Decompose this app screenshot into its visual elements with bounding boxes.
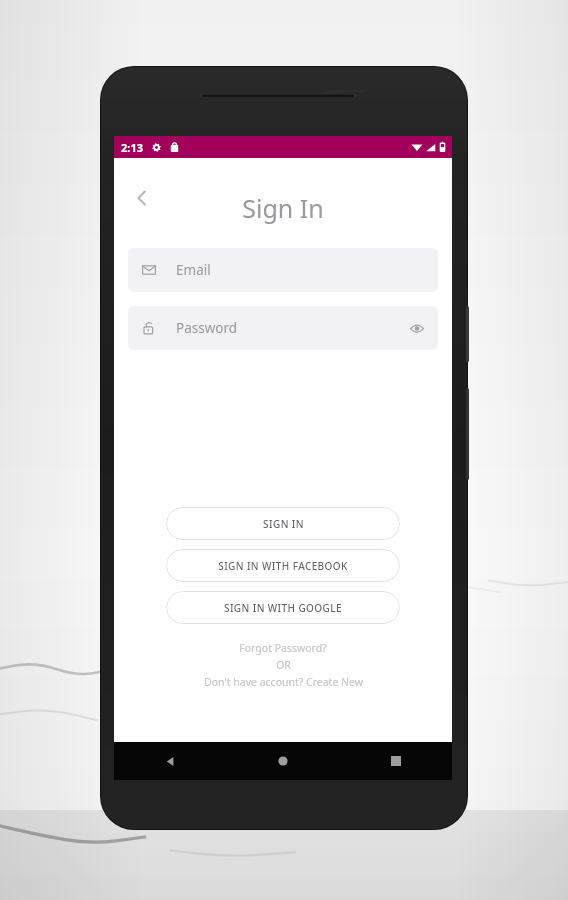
staticText: Forgot Password? bbox=[239, 641, 327, 655]
staticText: SIGN IN WITH FACEBOOK bbox=[218, 559, 348, 573]
staticText: Sign In bbox=[242, 191, 324, 225]
button[interactable]: SIGN IN WITH FACEBOOK bbox=[166, 549, 400, 582]
button[interactable]: Back bbox=[124, 180, 160, 216]
button[interactable]: SIGN IN WITH GOOGLE bbox=[166, 591, 400, 624]
button[interactable]: Don't have account? Create New bbox=[196, 674, 371, 690]
button[interactable]: Show password bbox=[402, 313, 432, 343]
button[interactable]: Back bbox=[114, 742, 226, 780]
button[interactable]: Password bbox=[128, 306, 438, 350]
button[interactable]: SIGN IN bbox=[166, 507, 400, 540]
staticText: OR bbox=[276, 658, 291, 672]
staticText: Email bbox=[176, 261, 211, 279]
button[interactable]: Recent apps bbox=[339, 742, 452, 780]
button[interactable]: Forgot Password? bbox=[231, 640, 335, 656]
staticText: SIGN IN bbox=[263, 517, 304, 531]
staticText: 2:13 bbox=[121, 140, 143, 155]
staticText: Password bbox=[176, 319, 238, 337]
button[interactable]: Home bbox=[226, 742, 339, 780]
button[interactable]: Email bbox=[128, 248, 438, 292]
staticText: Don't have account? Create New bbox=[204, 675, 363, 689]
staticText: SIGN IN WITH GOOGLE bbox=[224, 601, 342, 615]
